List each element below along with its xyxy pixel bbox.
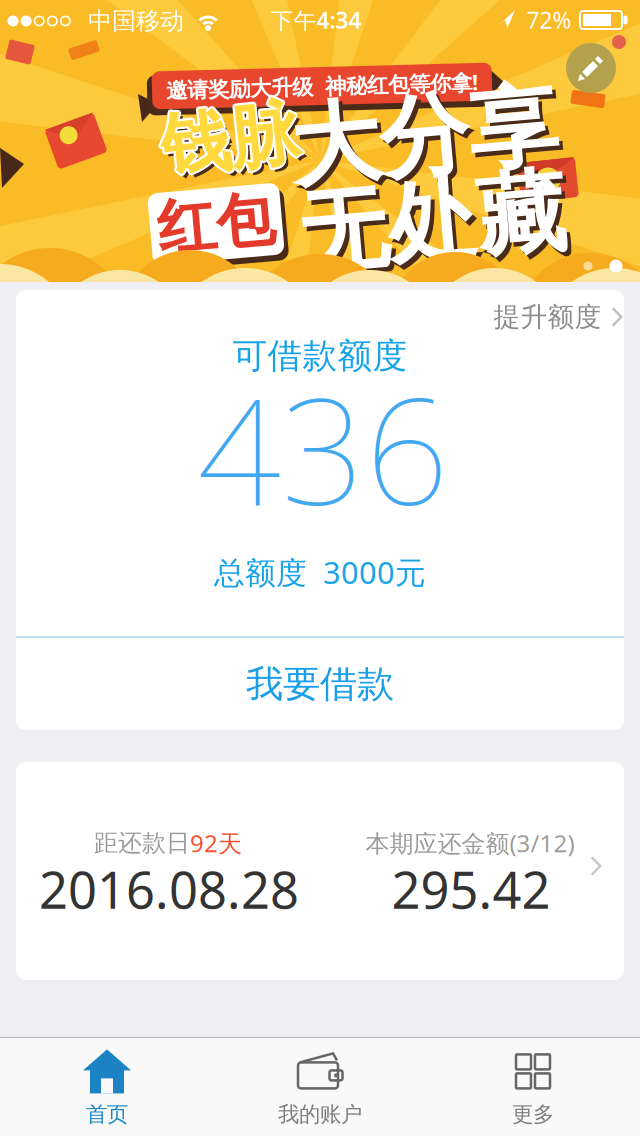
staticText: 钱脉 xyxy=(161,100,299,185)
staticText: 无处藏 xyxy=(302,173,569,282)
staticText: 提升额度 xyxy=(493,301,601,333)
staticText: 钱脉 xyxy=(161,97,299,183)
staticText: 295.42 xyxy=(391,855,550,923)
staticText: 可借款额度 xyxy=(232,335,407,377)
staticText: 钱脉 xyxy=(161,95,299,180)
button[interactable]: 我的账户 xyxy=(213,1037,426,1136)
staticText: 红包 xyxy=(157,188,275,260)
staticText: 首页 xyxy=(86,1101,128,1128)
staticText: 436 xyxy=(197,351,449,545)
staticText: 邀请奖励大升级 神秘红包等你拿! xyxy=(166,72,478,100)
staticText: 钱脉 xyxy=(159,96,297,181)
staticText: 钱脉 xyxy=(159,97,297,183)
button[interactable]: 首页 xyxy=(0,1037,213,1136)
staticText: 大分享 xyxy=(294,87,561,196)
staticText: 中国移动 xyxy=(88,6,184,36)
staticText: 钱脉 xyxy=(163,99,301,184)
button[interactable]: 我要借款 xyxy=(16,638,624,730)
staticText: 更多 xyxy=(512,1101,554,1128)
staticText: 本期应还金额(3/12) xyxy=(365,827,574,859)
staticText: 2016.08.28 xyxy=(39,855,299,923)
button[interactable]: 更多 xyxy=(426,1037,639,1136)
staticText: 92天 xyxy=(190,827,242,859)
staticText: 无处藏 xyxy=(298,168,565,278)
staticText: 72% xyxy=(526,5,571,35)
staticText: 钱脉 xyxy=(163,97,301,183)
button[interactable]: 距还款日 xyxy=(16,762,624,980)
button[interactable]: Edit xyxy=(566,43,616,93)
staticText: 下午4:34 xyxy=(270,5,361,35)
button[interactable]: 提升额度 xyxy=(483,301,632,333)
staticText: 总额度 3000元 xyxy=(214,552,426,592)
staticText: 大分享 xyxy=(290,82,557,192)
staticText: 我的账户 xyxy=(278,1101,362,1128)
staticText: 钱脉 xyxy=(159,99,297,184)
staticText: 钱脉 xyxy=(164,102,302,187)
staticText: 钱脉 xyxy=(163,96,301,181)
staticText: 距还款日 xyxy=(94,828,190,858)
staticText: 我要借款 xyxy=(246,661,394,707)
